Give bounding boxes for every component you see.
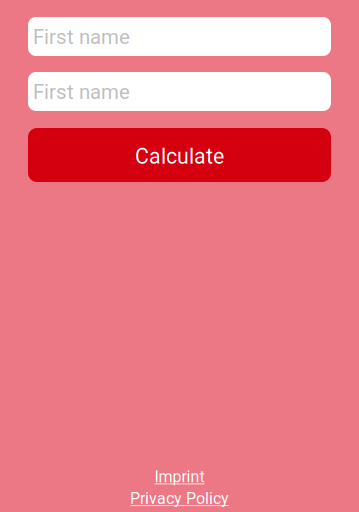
button[interactable]: Calculate (28, 128, 331, 182)
staticText: Imprint (154, 467, 204, 486)
staticText: Privacy Policy (130, 489, 229, 508)
button[interactable]: First name (28, 17, 331, 56)
staticText: Calculate (135, 144, 224, 169)
staticText: First name (33, 25, 130, 49)
button[interactable]: First name (28, 72, 331, 111)
button[interactable]: Privacy Policy (130, 489, 229, 508)
staticText: First name (33, 80, 130, 104)
button[interactable]: Imprint (154, 467, 204, 486)
